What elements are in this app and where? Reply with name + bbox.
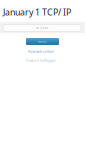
button[interactable]: Home bbox=[26, 38, 59, 45]
staticText: View web version bbox=[28, 49, 54, 54]
button[interactable]: View web version bbox=[26, 49, 56, 54]
staticText: Home bbox=[38, 40, 47, 43]
staticText: No posts. bbox=[35, 26, 48, 30]
staticText: Powered by bbox=[26, 59, 43, 62]
staticText: Blogger bbox=[44, 59, 56, 62]
staticText: . bbox=[57, 59, 58, 62]
staticText: January 1 TCP/ IP bbox=[3, 6, 71, 18]
button[interactable]: Powered by bbox=[26, 58, 58, 63]
